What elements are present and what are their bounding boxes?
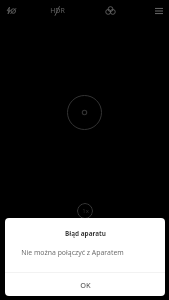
button[interactable]: Flash off <box>0 0 23 21</box>
button[interactable]: Zoom 1x <box>77 203 93 219</box>
staticText: Nie można połączyć z Aparatem <box>21 248 124 257</box>
button[interactable]: HDR off <box>45 0 69 21</box>
button[interactable]: OK <box>5 274 165 296</box>
staticText: OK <box>80 280 91 290</box>
button[interactable]: Menu <box>147 0 169 21</box>
staticText: 1x <box>82 207 89 215</box>
staticText: Błąd aparatu <box>65 229 106 238</box>
staticText: HDR <box>50 6 65 16</box>
button[interactable]: Filters <box>98 0 122 21</box>
